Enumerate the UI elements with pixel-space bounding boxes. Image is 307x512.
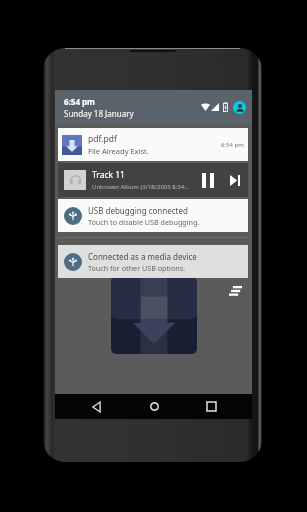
button[interactable]: App shortcut bbox=[229, 286, 242, 296]
staticText: 6:54 pm bbox=[64, 96, 95, 107]
staticText: Sunday 18 January bbox=[64, 108, 134, 119]
button[interactable]: Recent apps bbox=[191, 394, 231, 419]
button[interactable]: pdf.pdf bbox=[58, 128, 248, 161]
button[interactable]: User profile bbox=[233, 101, 246, 114]
button[interactable]: Next track bbox=[224, 163, 246, 197]
button[interactable]: USB debugging connected bbox=[58, 199, 248, 232]
button[interactable]: Back bbox=[76, 394, 116, 419]
staticText: USB debugging connected bbox=[88, 205, 188, 216]
staticText: Track 11 bbox=[92, 169, 125, 181]
staticText: pdf.pdf bbox=[88, 133, 117, 145]
staticText: File Already Exist. bbox=[88, 146, 149, 156]
button[interactable]: Home bbox=[134, 394, 174, 419]
button[interactable]: Pause bbox=[197, 163, 219, 197]
staticText: Unknown Album (3/18/2005 8:34:.. bbox=[92, 183, 190, 191]
staticText: Touch for other USB options. bbox=[88, 263, 186, 273]
staticText: Touch to disable USB debugging. bbox=[88, 217, 200, 227]
staticText: 6:54 pm bbox=[221, 141, 244, 149]
button[interactable]: Downloads bbox=[111, 276, 197, 354]
button[interactable]: Track 11 bbox=[58, 163, 248, 197]
staticText: Connected as a media device bbox=[88, 251, 197, 262]
button[interactable]: Connected as a media device bbox=[58, 245, 248, 278]
